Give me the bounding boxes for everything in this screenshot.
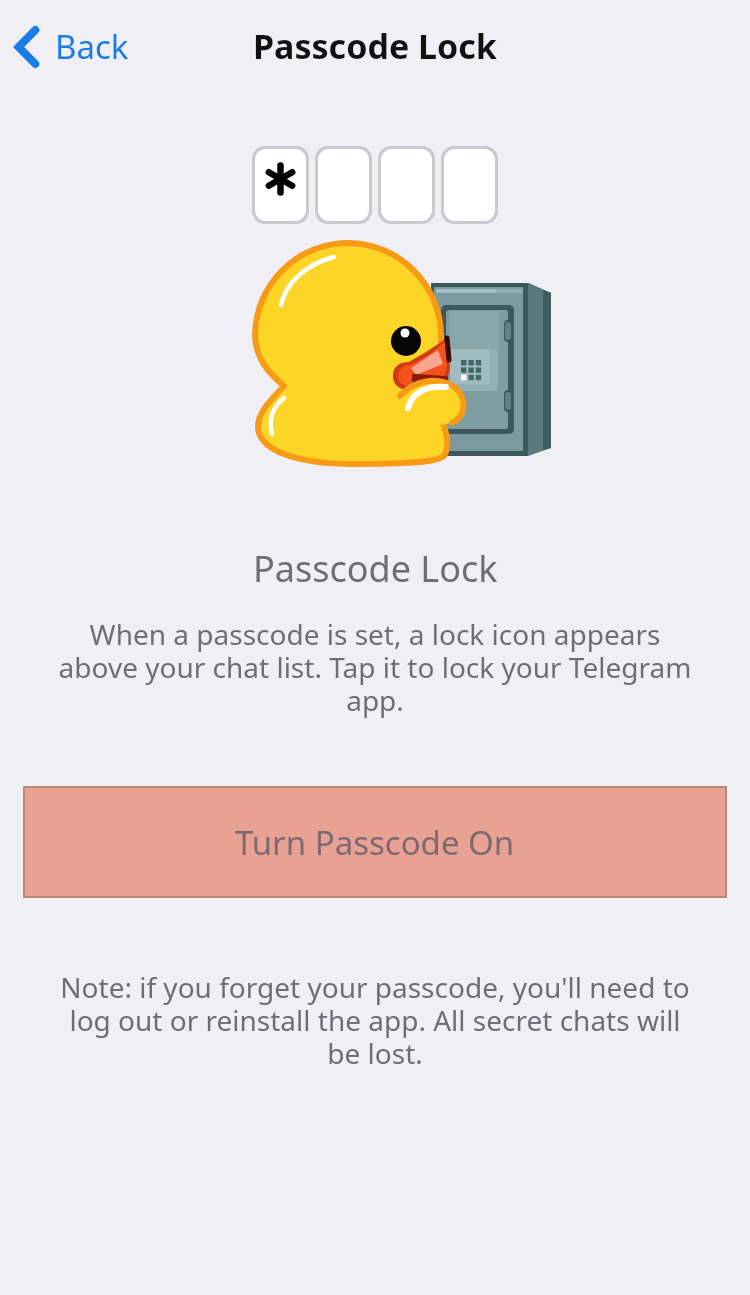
button[interactable]: Passcode digit: [378, 146, 435, 224]
button[interactable]: Back: [6, 14, 139, 79]
staticText: Back: [55, 24, 129, 69]
staticText: Passcode Lock: [253, 23, 497, 69]
other: Back: [16, 26, 38, 68]
button[interactable]: Passcode digit: [441, 146, 498, 224]
staticText: Note: if you forget your passcode, you'l…: [56, 968, 694, 1072]
staticText: Turn Passcode On: [235, 820, 515, 865]
button[interactable]: Passcode digit: [252, 146, 309, 224]
button[interactable]: Passcode digit: [315, 146, 372, 224]
staticText: When a passcode is set, a lock icon appe…: [56, 615, 694, 719]
staticText: Passcode Lock: [253, 544, 498, 593]
button[interactable]: Turn Passcode On: [25, 788, 725, 896]
